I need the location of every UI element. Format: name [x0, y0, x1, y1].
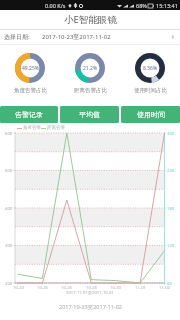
staticText: 2017-10-23至2017-11-02 [59, 303, 122, 311]
staticText: 角度告警占比 [14, 87, 47, 94]
staticText: 21.2% [83, 65, 98, 72]
staticText: 平均值 [79, 110, 100, 119]
staticText: 使用时间 [137, 110, 165, 119]
staticText: 10-28 [86, 285, 97, 291]
staticText: 60 [167, 281, 172, 287]
staticText: 10-26 [61, 285, 72, 291]
staticText: 400 [5, 206, 13, 212]
button[interactable]: 选择日期: [0, 30, 180, 44]
staticText: 角度告警 [23, 125, 41, 131]
staticText: 0.00 K/s [45, 2, 66, 9]
staticText: 180 [167, 206, 175, 212]
staticText: 300 [5, 243, 13, 249]
staticText: 500 [5, 168, 13, 174]
staticText: 240 [167, 168, 175, 174]
staticText: 120 [167, 243, 175, 249]
staticText: 小E智能眼镜 [64, 13, 117, 26]
staticText: 距离告警 [47, 125, 65, 131]
staticText: 选择日期: [4, 33, 30, 41]
staticText: 49.25% [22, 65, 39, 72]
staticText: 11-01 [135, 285, 146, 291]
staticText: 2017-11-01至2017-10-01 [66, 290, 114, 296]
staticText: 10-30 [110, 285, 121, 291]
staticText: 11-02 [159, 285, 170, 291]
staticText: 距离告警占比 [74, 87, 107, 94]
button[interactable]: 告警记录 [0, 106, 58, 123]
staticText: 10-23 [13, 285, 24, 291]
staticText: 200 [5, 281, 13, 287]
staticText: 600 [5, 131, 13, 137]
staticText: 8.56% [143, 65, 158, 72]
staticText: 使用时间占比 [134, 87, 167, 94]
button[interactable]: 使用时间 [121, 106, 180, 123]
staticText: 300 [167, 131, 175, 137]
staticText: 告警记录 [15, 110, 43, 119]
staticText: 68% [136, 2, 147, 9]
staticText: 15:13:41 [156, 2, 178, 9]
button[interactable]: 平均值 [60, 106, 119, 123]
staticText: 2017-10-23至2017-11-02 [42, 33, 111, 41]
staticText: 10-25 [37, 285, 48, 291]
